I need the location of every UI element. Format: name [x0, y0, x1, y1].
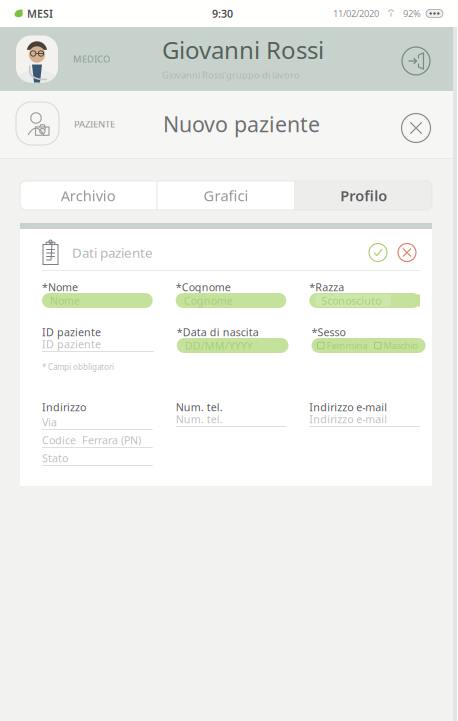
staticText: Maschio: [384, 339, 419, 352]
button[interactable]: Annulla: [394, 239, 420, 265]
staticText: *Cognome: [176, 280, 231, 294]
staticText: Codice Ferrara (PN): [42, 433, 141, 447]
staticText: *Data di nascita: [177, 325, 259, 339]
staticText: Nome: [50, 293, 80, 308]
button[interactable]: Chiudi: [396, 108, 436, 148]
staticText: Num. tel.: [176, 412, 223, 426]
staticText: Indirizzo: [42, 400, 86, 414]
staticText: DD/MM/YYYY: [185, 338, 253, 353]
staticText: Indirizzo e-mail: [309, 400, 387, 414]
staticText: Grafici: [203, 186, 248, 205]
staticText: Via: [42, 415, 57, 429]
button[interactable]: Foto paziente: [16, 102, 59, 145]
staticText: Femmina: [327, 339, 368, 352]
staticText: Indirizzo e-mail: [309, 412, 387, 426]
staticText: 11/02/2020: [333, 7, 379, 20]
staticText: *Sesso: [312, 325, 346, 339]
staticText: PAZIENTE: [74, 118, 115, 130]
staticText: Giovanni Rossi: [162, 34, 324, 66]
staticText: Archivio: [61, 186, 116, 205]
staticText: ID paziente: [42, 337, 101, 351]
staticText: 92%: [403, 7, 421, 20]
staticText: Sconosciuto: [321, 293, 381, 308]
button[interactable]: Esci: [396, 41, 436, 81]
staticText: *Nome: [42, 280, 78, 294]
staticText: Nuovo paziente: [163, 110, 320, 138]
staticText: Stato: [42, 451, 68, 465]
staticText: Profilo: [340, 186, 387, 205]
staticText: MESI: [27, 6, 53, 21]
staticText: *Razza: [309, 280, 344, 294]
staticText: Cognome: [184, 293, 233, 308]
staticText: ID paziente: [42, 325, 101, 339]
button[interactable]: Conferma: [365, 239, 391, 265]
staticText: MEDICO: [73, 53, 110, 65]
staticText: Giovanni Rossi'gruppo di lavoro: [162, 69, 300, 81]
button[interactable]: Grafici: [158, 181, 294, 210]
staticText: Dati paziente: [72, 244, 153, 261]
staticText: 9:30: [212, 6, 233, 21]
staticText: * Campi obbligatori: [42, 362, 114, 372]
button[interactable]: Archivio: [20, 181, 157, 210]
button[interactable]: Profilo: [295, 181, 432, 210]
staticText: Num. tel.: [176, 400, 223, 414]
